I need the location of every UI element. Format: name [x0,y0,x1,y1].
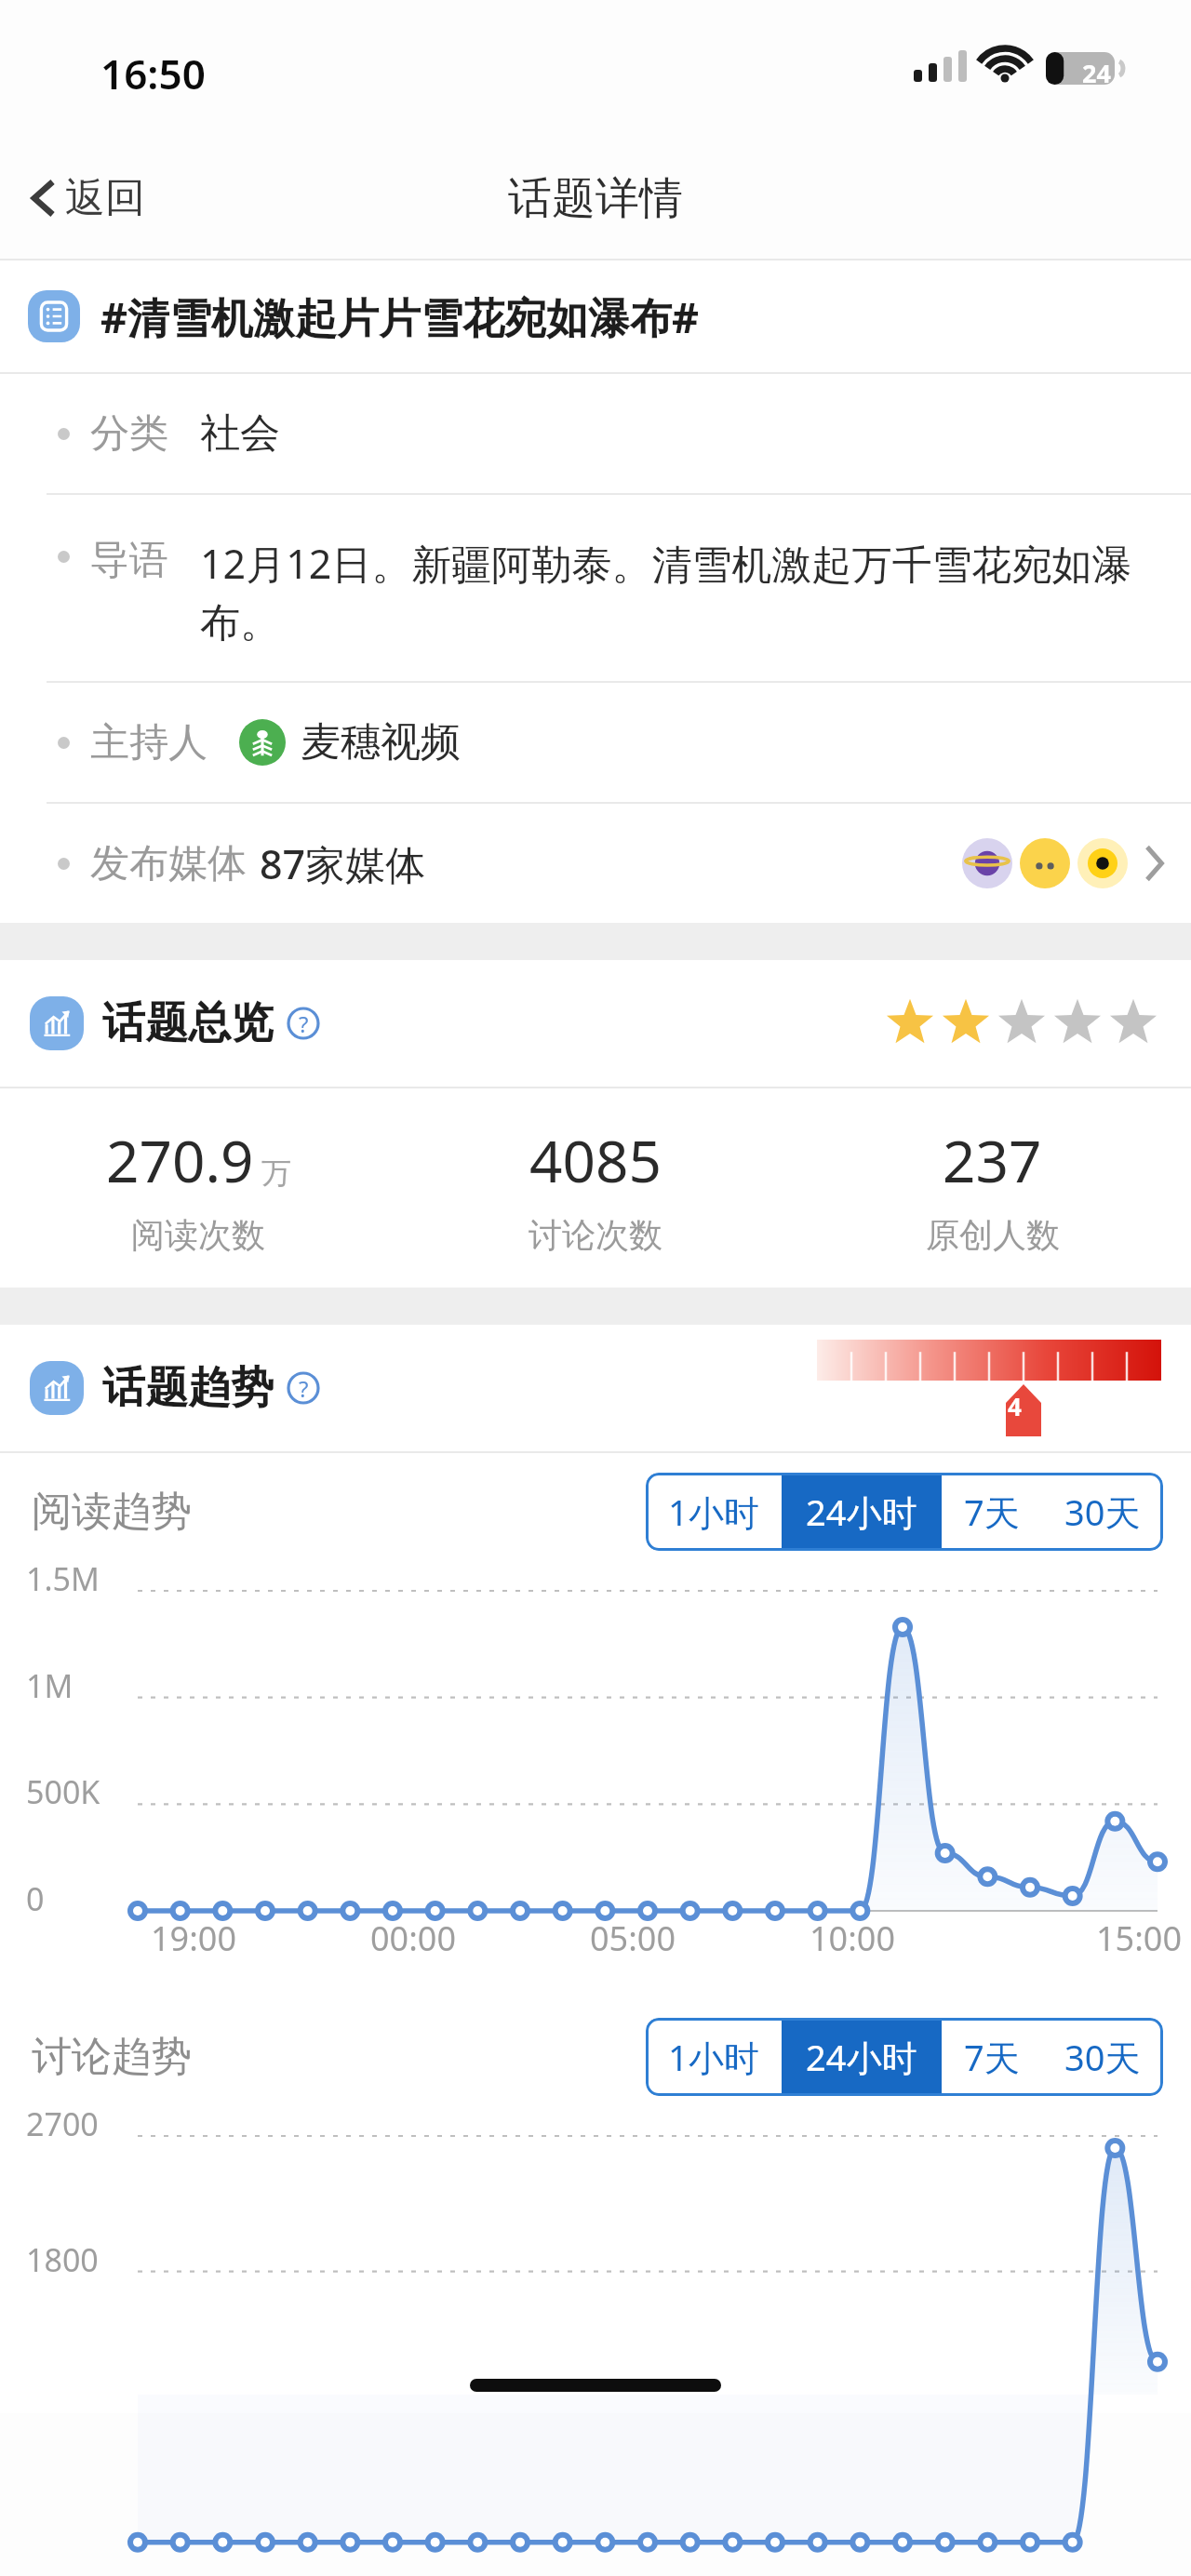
button[interactable]: 分类 [0,374,1191,493]
staticText: 24 [1082,56,1111,90]
staticText: 30天 [1064,1488,1141,1536]
button[interactable]: 7天 [942,1473,1042,1551]
staticText: 24小时 [806,2033,917,2081]
button[interactable]: 30天 [1042,1473,1163,1551]
staticText: 话题趋势 [102,1361,274,1415]
staticText: ? [299,1008,309,1039]
staticText: 麦穗视频 [301,717,461,767]
staticText: 24小时 [806,1488,917,1536]
button[interactable]: 237 [794,1121,1191,1256]
button[interactable]: 1小时 [646,1473,782,1551]
staticText: 1M [26,1664,74,1707]
staticText: 话题总览 [102,996,274,1050]
staticText: 237 [943,1121,1042,1199]
button[interactable]: 30天 [1042,2018,1163,2096]
button[interactable]: 导语 [0,495,1191,681]
staticText: 1小时 [668,1488,759,1536]
staticText: 社会 [200,408,280,459]
staticText: 19:00 [84,1915,303,1961]
staticText: 270.9 [106,1121,254,1199]
staticText: 15:00 [962,1915,1182,1961]
staticText: 16:50 [100,46,206,101]
button[interactable]: 24小时 [782,1473,942,1551]
button[interactable]: 270.9 [0,1121,396,1256]
staticText: 阅读次数 [131,1214,265,1256]
staticText: 返回 [65,173,145,223]
staticText: 10:00 [743,1915,962,1961]
staticText: 讨论趋势 [32,2032,192,2082]
staticText: 导语 [90,536,168,585]
staticText: 讨论次数 [529,1214,662,1256]
staticText: 0 [26,1877,45,1920]
other: 查看全部媒体 [1141,842,1167,885]
staticText: 30天 [1064,2033,1141,2081]
button[interactable]: 话题趋势 [30,1361,274,1415]
staticText: 4085 [529,1121,662,1199]
staticText: 7天 [964,2033,1020,2081]
button[interactable]: 主持人 [0,683,1191,802]
staticText: 万 [261,1155,291,1192]
staticText: 发布媒体 [90,839,247,888]
staticText: ? [299,1373,309,1404]
button[interactable]: 说明 [285,1369,322,1407]
staticText: 7天 [964,1488,1020,1536]
button[interactable]: 返回 [0,166,162,231]
button[interactable]: 说明 [285,1005,322,1042]
staticText: 2700 [26,2102,99,2145]
staticText: 00:00 [303,1915,523,1961]
staticText: 500K [26,1770,100,1813]
staticText: 05:00 [523,1915,743,1961]
staticText: 主持人 [90,718,207,767]
staticText: 话题详情 [508,171,683,226]
staticText: 4 [1008,1390,1022,1422]
button[interactable]: 4085 [396,1121,794,1256]
button[interactable]: 话题总览 [0,960,1191,1087]
button[interactable]: 1小时 [646,2018,782,2096]
staticText: 12月12日。新疆阿勒泰。清雪机激起万千雪花宛如瀑布。 [200,536,1158,648]
staticText: 阅读趋势 [32,1487,192,1537]
staticText: 1小时 [668,2033,759,2081]
staticText: #清雪机激起片片雪花宛如瀑布# [100,288,700,345]
button[interactable]: 发布媒体 [0,804,1191,923]
staticText: 1.5M [26,1557,100,1600]
staticText: 87家媒体 [260,836,426,891]
staticText: 1800 [26,2238,99,2281]
button[interactable]: 7天 [942,2018,1042,2096]
staticText: 分类 [90,409,168,459]
staticText: 原创人数 [926,1214,1060,1256]
button[interactable]: #清雪机激起片片雪花宛如瀑布# [0,260,1191,372]
button[interactable]: 24小时 [782,2018,942,2096]
